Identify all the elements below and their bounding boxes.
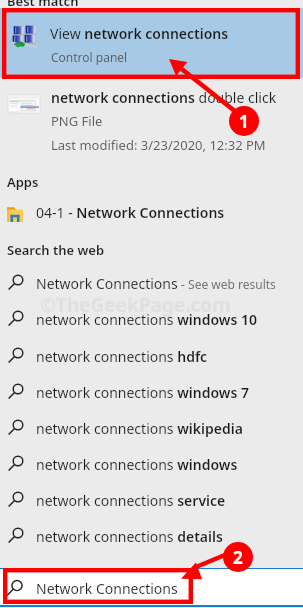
- staticText: network connections windows: [36, 455, 238, 474]
- button[interactable]: network connections windows 10: [0, 301, 303, 337]
- button[interactable]: network connections double click: [0, 84, 303, 156]
- button[interactable]: Network Connections: [0, 265, 303, 301]
- button[interactable]: network connections wikipedia: [0, 410, 303, 446]
- staticText: network connections windows 7: [36, 383, 250, 402]
- button[interactable]: network connections service: [0, 482, 303, 518]
- other: Folder: [7, 207, 23, 222]
- staticText: ©TheGeekPage.com: [40, 292, 231, 318]
- staticText: Network Connections: [36, 579, 178, 598]
- button[interactable]: Network Connections: [0, 569, 303, 605]
- staticText: 1: [239, 110, 249, 133]
- staticText: Network Connections: [36, 274, 178, 293]
- button[interactable]: Network connections: [0, 8, 303, 78]
- staticText: network connections double click: [51, 88, 277, 107]
- staticText: - See web results: [178, 276, 276, 292]
- staticText: Best match: [7, 0, 79, 10]
- button[interactable]: network connections windows 7: [0, 374, 303, 410]
- staticText: PNG File: [51, 112, 103, 130]
- staticText: 04-1 - Network Connections: [36, 203, 225, 222]
- staticText: network connections service: [36, 491, 226, 510]
- other: Network connections: [12, 19, 38, 45]
- staticText: Last modified: 3/23/2020, 12:32 PM: [51, 136, 266, 154]
- button[interactable]: network connections details: [0, 518, 303, 554]
- staticText: Search the web: [7, 241, 105, 259]
- staticText: network connections hdfc: [36, 347, 208, 366]
- staticText: network connections windows 10: [36, 310, 258, 329]
- staticText: View network connections: [50, 24, 229, 43]
- staticText: Control panel: [51, 49, 128, 65]
- staticText: network connections details: [36, 527, 223, 546]
- staticText: network connections wikipedia: [36, 419, 243, 438]
- button[interactable]: Folder: [0, 199, 303, 233]
- staticText: 2: [233, 546, 243, 569]
- staticText: Apps: [7, 173, 39, 191]
- button[interactable]: network connections windows: [0, 446, 303, 482]
- button[interactable]: network connections hdfc: [0, 338, 303, 374]
